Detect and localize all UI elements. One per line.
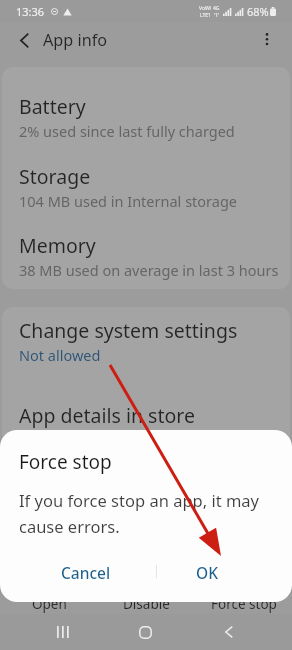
staticText: LTE1: [200, 12, 211, 19]
staticText: Battery: [19, 93, 86, 120]
button[interactable]: More options: [255, 27, 279, 51]
staticText: OK: [196, 562, 218, 583]
staticText: Change system settings: [19, 317, 238, 344]
staticText: 2% used since last fully charged: [19, 121, 235, 141]
staticText: 13:36: [16, 4, 45, 19]
button[interactable]: Recent apps: [22, 614, 104, 650]
button[interactable]: Cancel: [25, 556, 146, 588]
staticText: Disable: [123, 595, 170, 613]
button[interactable]: Back: [187, 614, 270, 650]
staticText: 104 MB used in Internal storage: [19, 191, 238, 211]
staticText: Force stop: [211, 595, 277, 613]
staticText: If you force stop an app, it may cause e…: [19, 489, 263, 538]
button[interactable]: OK: [146, 556, 267, 588]
staticText: '1': [214, 12, 220, 19]
staticText: VoWi: [199, 5, 211, 12]
button[interactable]: Change system settings: [0, 317, 292, 365]
button[interactable]: Force stop: [195, 592, 292, 616]
staticText: Force stop: [19, 449, 112, 475]
staticText: 4G: [213, 5, 220, 12]
button[interactable]: Open: [0, 592, 98, 616]
button[interactable]: App details in store: [0, 402, 292, 429]
button[interactable]: Disable: [98, 592, 195, 616]
button[interactable]: Storage: [0, 163, 292, 211]
staticText: 38 MB used on average in last 3 hours: [19, 260, 279, 280]
staticText: Storage: [19, 163, 91, 190]
staticText: Not allowed: [19, 345, 101, 365]
staticText: Open: [32, 595, 67, 613]
staticText: Memory: [19, 232, 96, 259]
button[interactable]: Battery: [0, 93, 292, 141]
staticText: 68%: [247, 4, 269, 19]
button[interactable]: Home: [104, 614, 187, 650]
staticText: Cancel: [61, 562, 111, 583]
staticText: App details in store: [19, 402, 195, 429]
button[interactable]: Memory: [0, 232, 292, 280]
button[interactable]: Navigate up: [12, 28, 36, 52]
staticText: App info: [43, 29, 108, 51]
